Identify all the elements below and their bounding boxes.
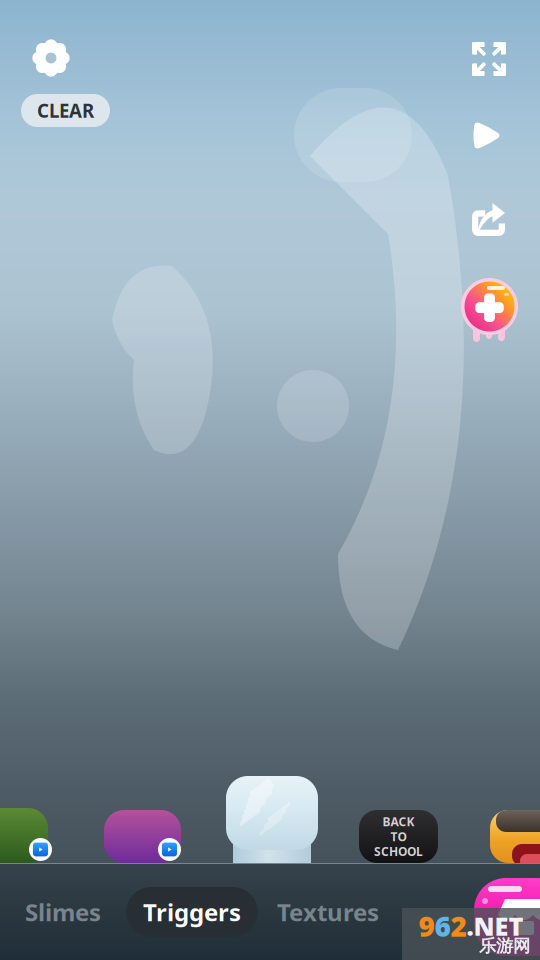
button[interactable]: Back to school slime <box>359 810 438 863</box>
staticText: SCHOOL <box>374 843 423 859</box>
staticText: BACK <box>382 814 414 829</box>
staticText: Triggers <box>143 896 241 928</box>
staticText: .NET <box>466 909 523 943</box>
staticText: CLEAR <box>37 98 94 123</box>
staticText: 2 <box>450 907 466 945</box>
button[interactable]: Green slime <box>0 808 48 863</box>
button[interactable]: Fullscreen <box>472 42 506 76</box>
button[interactable]: Add slime <box>461 278 518 335</box>
button[interactable]: Play <box>474 120 503 151</box>
button[interactable]: Clear slime, selected <box>226 776 318 863</box>
staticText: TO <box>390 828 406 844</box>
staticText: 6 <box>434 907 450 945</box>
button[interactable]: Textures <box>258 879 398 945</box>
button[interactable]: Shop <box>474 878 540 956</box>
staticText: 乐游网 <box>479 935 530 957</box>
staticText: Textures <box>277 896 379 928</box>
button[interactable]: CLEAR <box>21 94 110 127</box>
staticText: Slimes <box>25 896 101 928</box>
button[interactable]: Triggers <box>126 887 258 937</box>
button[interactable]: Sunglasses slime <box>490 810 540 863</box>
button[interactable]: Purple slime <box>104 810 181 863</box>
button[interactable]: Settings <box>33 40 69 76</box>
staticText: 9 <box>418 907 434 945</box>
button[interactable]: Share <box>472 203 505 236</box>
button[interactable]: Slimes <box>0 879 126 945</box>
